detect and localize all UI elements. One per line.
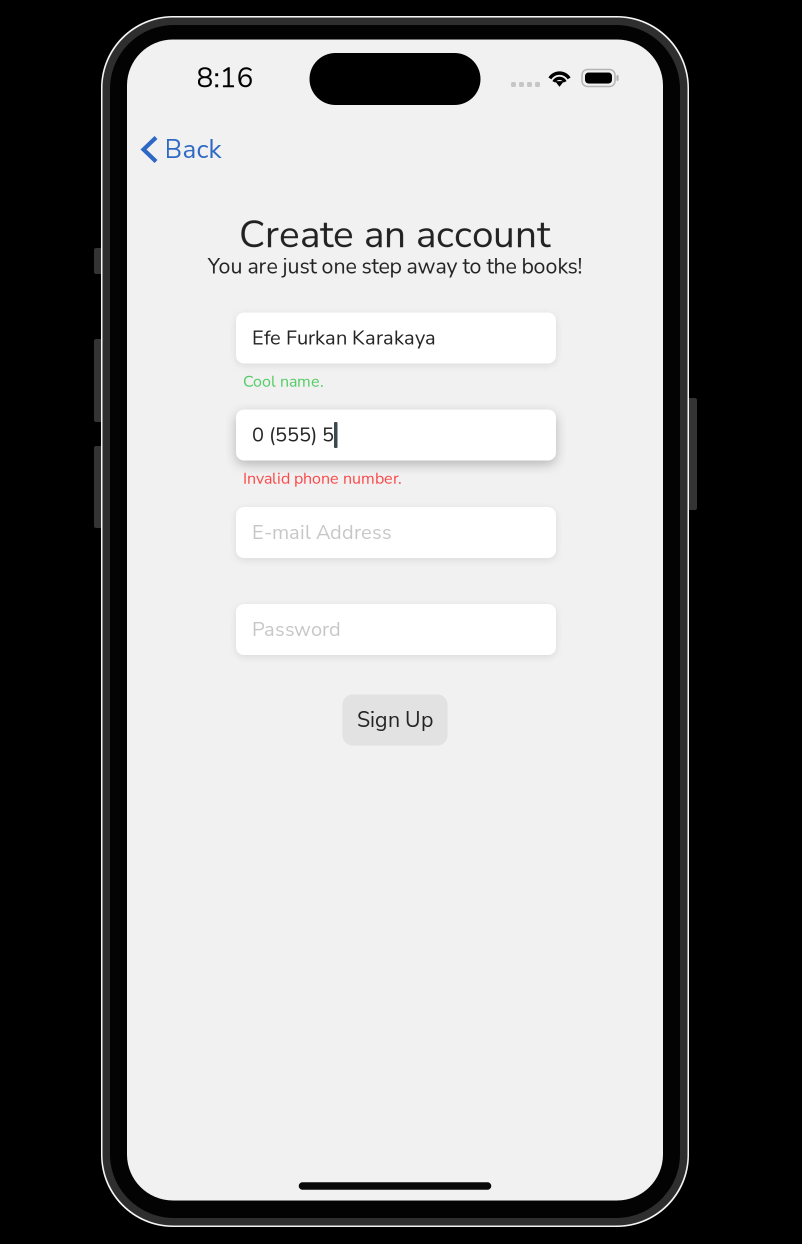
staticText: 0 (555) 5 — [252, 421, 334, 449]
staticText: E-mail Address — [252, 519, 392, 546]
staticText: 8:16 — [196, 59, 253, 97]
staticText: Password — [252, 616, 341, 643]
staticText: Create an account — [239, 208, 551, 261]
staticText: Back — [164, 132, 221, 167]
staticText: Efe Furkan Karakaya — [252, 324, 436, 352]
button[interactable]: Sign Up — [342, 694, 447, 745]
button[interactable]: Back — [130, 123, 231, 176]
staticText: You are just one step away to the books! — [207, 252, 582, 281]
staticText: Invalid phone number. — [243, 468, 402, 489]
staticText: Sign Up — [357, 705, 433, 735]
staticText: Cool name. — [243, 371, 324, 392]
